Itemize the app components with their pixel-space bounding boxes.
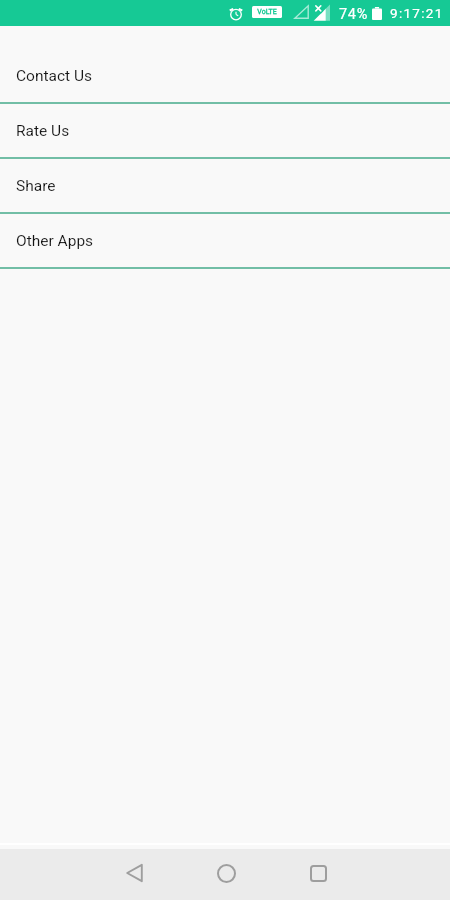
staticText: Other Apps — [16, 232, 94, 250]
button[interactable]: Back — [112, 851, 156, 895]
staticText: Rate Us — [16, 122, 70, 140]
button[interactable]: Rate Us — [0, 104, 450, 159]
staticText: Share — [16, 177, 56, 195]
button[interactable]: Share — [0, 159, 450, 214]
staticText: 74% — [339, 6, 369, 23]
button[interactable]: Recent apps — [296, 851, 340, 895]
staticText: Contact Us — [16, 67, 93, 85]
button[interactable]: Other Apps — [0, 214, 450, 269]
button[interactable]: Home — [204, 851, 248, 895]
staticText: 9:17:21 — [390, 5, 444, 21]
button[interactable]: Contact Us — [0, 49, 450, 104]
staticText: VoLTE — [257, 8, 277, 16]
